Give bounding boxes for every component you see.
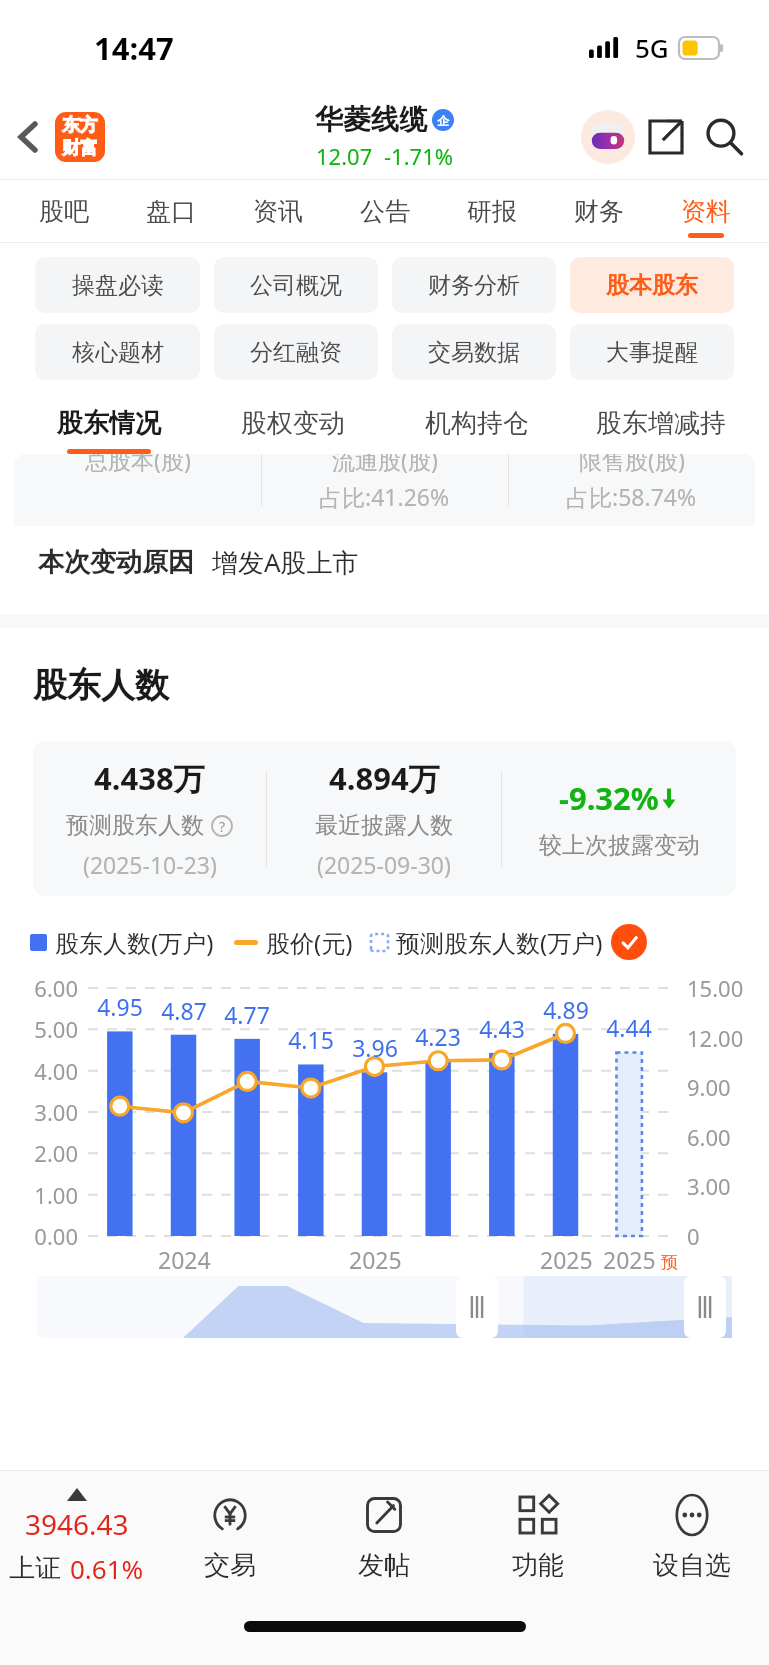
staticText: 9.00 (687, 1072, 731, 1102)
staticText: 0.61% (70, 1551, 144, 1586)
button[interactable]: Share (637, 108, 695, 166)
staticText: 占比:41.26% (319, 481, 450, 512)
staticText: 股东增减持 (596, 407, 726, 440)
button[interactable]: 公司概况 (214, 257, 378, 313)
staticText: 6.00 (0, 973, 78, 1003)
staticText: 4.44 (591, 1012, 667, 1043)
button[interactable]: Search (695, 108, 753, 166)
staticText: 5G (635, 30, 669, 65)
staticText: 6.00 (687, 1122, 731, 1152)
staticText: 公司概况 (250, 271, 342, 300)
button[interactable]: 机构持仓 (385, 392, 569, 454)
button[interactable]: Back (0, 109, 56, 165)
button[interactable]: 股权变动 (201, 392, 385, 454)
staticText: 预测股东人数 (66, 811, 204, 840)
button[interactable]: 3946.43 (0, 1471, 153, 1603)
staticText: 上证 (9, 1552, 61, 1585)
staticText: 0.00 (0, 1221, 78, 1251)
staticText: (2025-10-23) (83, 849, 217, 880)
button[interactable]: 股本股东 (570, 257, 734, 313)
staticText: 交易数据 (428, 338, 520, 367)
staticText: 0 (687, 1221, 700, 1251)
staticText: 股东人数 (33, 664, 169, 707)
staticText: 较上次披露变动 (539, 831, 700, 860)
staticText: 2025 (603, 1244, 656, 1275)
staticText: 华菱线缆 (315, 102, 427, 137)
staticText: 设自选 (653, 1549, 731, 1582)
button[interactable]: 功能 (461, 1471, 615, 1603)
staticText: 4.00 (0, 1056, 78, 1086)
staticText: 06-30 (154, 1281, 215, 1312)
staticText: 股东情况 (57, 407, 161, 440)
staticText: 核心题材 (72, 338, 164, 367)
staticText: 大事提醒 (606, 338, 698, 367)
staticText: -1.71% (384, 141, 454, 171)
staticText: 财务分析 (428, 271, 520, 300)
staticText: 机构持仓 (425, 407, 529, 440)
staticText: 4.15 (273, 1024, 349, 1055)
button[interactable]: AI assistant (579, 108, 637, 166)
button[interactable]: 分红融资 (214, 324, 378, 380)
staticText: 2025 (540, 1244, 593, 1275)
button[interactable]: 股吧 (10, 180, 117, 242)
button[interactable]: Range handle (684, 1276, 726, 1338)
staticText: 占比:58.74% (566, 481, 697, 512)
button[interactable]: 研报 (438, 180, 545, 242)
button[interactable]: 盘口 (117, 180, 224, 242)
staticText: 4.43 (464, 1013, 540, 1044)
staticText: 研报 (467, 196, 517, 227)
staticText: 股权变动 (241, 407, 345, 440)
button[interactable]: 发帖 (307, 1471, 461, 1603)
button[interactable]: 交易数据 (392, 324, 556, 380)
staticText: 4.438万 (94, 757, 205, 799)
staticText: 3.00 (0, 1097, 78, 1127)
button[interactable]: 财务分析 (392, 257, 556, 313)
button[interactable]: 股东增减持 (569, 392, 753, 454)
staticText: 公告 (360, 196, 410, 227)
button[interactable]: East Money home (55, 112, 105, 162)
staticText: -9.32% (559, 777, 659, 819)
button[interactable]: 股东情况 (16, 392, 201, 454)
staticText: 股本股东 (606, 271, 698, 300)
staticText: 增发A股上市 (212, 544, 359, 580)
staticText: 功能 (512, 1549, 564, 1582)
staticText: 3.00 (687, 1171, 731, 1201)
staticText: 4.89 (528, 994, 604, 1025)
button[interactable]: 公告 (331, 180, 438, 242)
button[interactable]: 财务 (545, 180, 652, 242)
button[interactable]: 设自选 (615, 1471, 769, 1603)
staticText: 资料 (681, 196, 731, 227)
staticText: 15.00 (687, 973, 744, 1003)
staticText: 操盘必读 (72, 271, 164, 300)
staticText: 4.23 (400, 1021, 476, 1052)
staticText: 2.00 (0, 1138, 78, 1168)
staticText: 12.00 (687, 1023, 744, 1053)
staticText: 总股本(股) (85, 454, 191, 475)
button[interactable]: Toggle forecast (611, 924, 647, 960)
staticText: 最近披露人数 (315, 811, 453, 840)
staticText: (2025-09-30) (317, 849, 451, 880)
staticText: 股吧 (39, 196, 89, 227)
button[interactable]: 资料 (652, 180, 759, 242)
staticText: 流通股(股) (332, 454, 438, 475)
button[interactable]: 操盘必读 (35, 257, 200, 313)
button[interactable]: Range handle (456, 1276, 498, 1338)
button[interactable]: 资讯 (224, 180, 331, 242)
staticText: 发帖 (358, 1549, 410, 1582)
staticText: 股东人数(万户) (55, 926, 214, 959)
staticText: 1.00 (0, 1180, 78, 1210)
button[interactable]: 交易 (153, 1471, 307, 1603)
staticText: 企 (437, 113, 449, 128)
staticText: 2024 (158, 1244, 211, 1275)
button[interactable]: 大事提醒 (570, 324, 734, 380)
staticText: 4.95 (82, 991, 158, 1022)
button[interactable]: 核心题材 (35, 324, 200, 380)
staticText: 3946.43 (25, 1505, 129, 1543)
button[interactable]: 本次变动原因 (38, 526, 755, 598)
staticText: 4.894万 (329, 757, 440, 799)
staticText: 限售股(股) (579, 454, 685, 475)
staticText: 4.77 (209, 999, 285, 1030)
staticText: 5.00 (0, 1014, 78, 1044)
